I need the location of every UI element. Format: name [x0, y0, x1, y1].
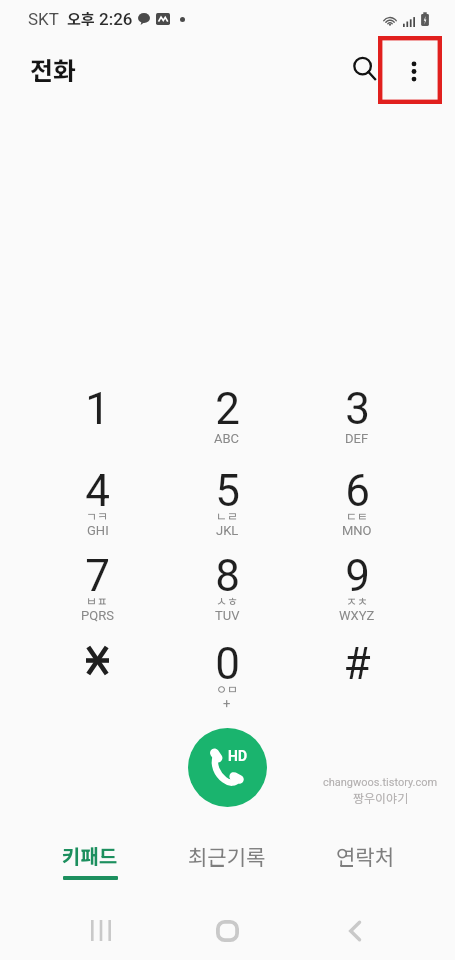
button[interactable]: 5 — [162, 457, 292, 541]
staticText: HD — [228, 748, 247, 764]
staticText: DEF — [345, 431, 369, 446]
staticText: 8 — [215, 550, 240, 602]
button[interactable]: 2 — [162, 375, 292, 459]
staticText: 9 — [345, 550, 370, 602]
staticText: ABC — [214, 431, 240, 446]
button[interactable]: 검색 — [341, 45, 389, 93]
staticText: ㅅㅎ — [216, 592, 239, 609]
button[interactable]: 키패드 — [21, 838, 158, 888]
button[interactable]: 뒤로 — [291, 901, 418, 960]
button[interactable]: 홈 — [164, 901, 291, 960]
staticText: 4 — [85, 465, 110, 517]
button[interactable]: 통화 — [188, 728, 267, 807]
button[interactable]: 1 — [33, 375, 162, 459]
staticText: 0 — [215, 638, 240, 690]
staticText: 연락처 — [336, 841, 394, 871]
staticText: ㄴㄹ — [216, 507, 239, 524]
staticText: TUV — [215, 608, 240, 623]
button[interactable]: 8 — [162, 542, 292, 626]
staticText: GHI — [87, 523, 109, 538]
button[interactable]: 더보기 — [390, 47, 438, 95]
staticText: ㄱㅋ — [86, 507, 109, 524]
staticText: + — [223, 696, 231, 711]
button[interactable] — [33, 630, 162, 714]
button[interactable]: 0 — [162, 630, 292, 714]
staticText: 3 — [345, 383, 370, 435]
staticText: 오후 — [67, 8, 95, 30]
staticText: ㅈㅊ — [346, 592, 369, 609]
staticText: ㄷㅌ — [346, 507, 369, 524]
staticText: # — [343, 638, 371, 690]
button[interactable]: 3 — [292, 375, 422, 459]
staticText: PQRS — [81, 608, 114, 623]
button[interactable]: 4 — [33, 457, 162, 541]
staticText: 2 — [215, 383, 240, 435]
staticText: 1 — [85, 383, 110, 435]
staticText: 짱우이야기 — [353, 789, 409, 806]
button[interactable]: 최근 앱 — [37, 901, 164, 960]
staticText: 6 — [345, 465, 370, 517]
staticText: 2:26 — [99, 9, 133, 29]
button[interactable]: 연락처 — [296, 838, 434, 888]
button[interactable]: 최근기록 — [158, 838, 296, 888]
staticText: changwoos.tistory.com — [323, 776, 438, 789]
staticText: 7 — [85, 550, 110, 602]
staticText: JKL — [216, 523, 239, 538]
staticText: SKT — [28, 9, 59, 29]
staticText: ㅇㅁ — [216, 680, 239, 697]
staticText: 키패드 — [62, 841, 118, 870]
staticText: 5 — [215, 465, 240, 517]
staticText: ㅂㅍ — [86, 592, 109, 609]
button[interactable]: 7 — [33, 542, 162, 626]
button[interactable]: 9 — [292, 542, 422, 626]
staticText: 최근기록 — [188, 841, 266, 871]
staticText: 전화 — [30, 51, 77, 87]
staticText: MNO — [342, 523, 372, 538]
button[interactable]: 6 — [292, 457, 422, 541]
staticText: WXYZ — [339, 608, 375, 623]
button[interactable]: # — [292, 630, 422, 714]
